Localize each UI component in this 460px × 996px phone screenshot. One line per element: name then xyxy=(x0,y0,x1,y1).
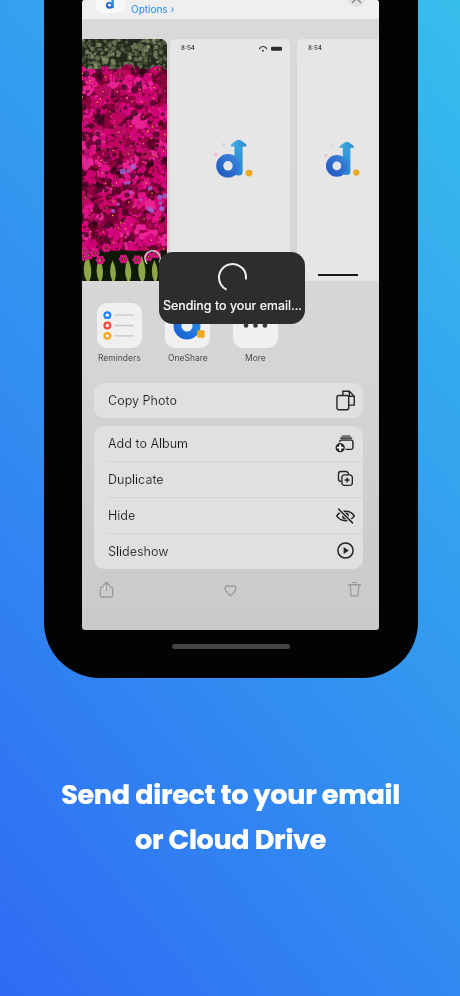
staticText: OneShare xyxy=(168,353,208,363)
staticText: Sending to your email... xyxy=(163,298,302,313)
button[interactable]: Options › xyxy=(131,3,175,15)
staticText: Hide xyxy=(108,508,136,523)
staticText: 8:54 xyxy=(308,44,322,51)
button[interactable]: Slideshow xyxy=(94,534,363,569)
button[interactable]: Add to Album xyxy=(94,426,363,461)
button[interactable]: Duplicate xyxy=(94,462,363,497)
staticText: Add to Album xyxy=(108,436,189,451)
button[interactable]: Hide xyxy=(94,498,363,533)
button[interactable]: Close xyxy=(348,0,365,7)
staticText: or Cloud Drive xyxy=(135,821,326,859)
button[interactable]: Favourite xyxy=(222,581,239,598)
staticText: Reminders xyxy=(98,353,141,363)
button[interactable]: Copy Photo xyxy=(94,383,363,418)
staticText: Copy Photo xyxy=(108,393,177,408)
button[interactable]: More xyxy=(233,303,278,363)
button[interactable]: Delete xyxy=(346,581,363,598)
staticText: Slideshow xyxy=(108,544,169,559)
staticText: Send direct to your email xyxy=(61,776,400,814)
button[interactable]: Reminders xyxy=(97,303,142,363)
button[interactable]: OneShare xyxy=(165,303,210,363)
staticText: 8:54 xyxy=(181,44,195,51)
staticText: Duplicate xyxy=(108,472,164,487)
staticText: More xyxy=(245,353,266,363)
button[interactable]: Share xyxy=(98,581,115,598)
